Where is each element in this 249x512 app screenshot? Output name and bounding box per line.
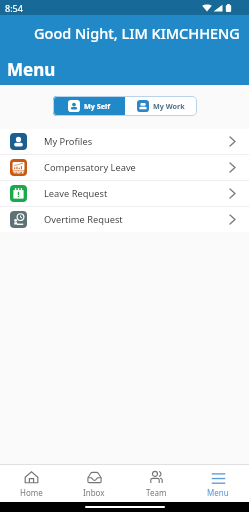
- staticText: My Profiles: [44, 135, 93, 148]
- button[interactable]: My Profiles: [0, 129, 249, 154]
- button[interactable]: Overtime Request: [0, 207, 249, 232]
- button[interactable]: Inbox: [63, 465, 125, 502]
- staticText: Overtime Request: [44, 213, 123, 226]
- staticText: Good Night, LIM KIMCHHENG: [34, 23, 240, 43]
- staticText: Menu: [7, 58, 56, 81]
- staticText: Home: [20, 487, 43, 498]
- staticText: 8:54: [5, 2, 23, 14]
- staticText: Compensatory Leave: [44, 161, 136, 174]
- button[interactable]: Home: [0, 465, 63, 502]
- staticText: Leave Request: [44, 187, 108, 200]
- staticText: Menu: [207, 487, 229, 498]
- button[interactable]: Leave Request: [0, 181, 249, 206]
- button[interactable]: Compensatory Leave: [0, 155, 249, 180]
- button[interactable]: Team: [125, 465, 187, 502]
- staticText: Inbox: [83, 487, 105, 498]
- button[interactable]: Menu: [187, 465, 249, 502]
- button[interactable]: My Self: [53, 96, 125, 116]
- staticText: My Work: [153, 101, 185, 111]
- staticText: Team: [146, 487, 167, 498]
- staticText: My Self: [84, 101, 110, 111]
- button[interactable]: My Work: [125, 96, 197, 116]
